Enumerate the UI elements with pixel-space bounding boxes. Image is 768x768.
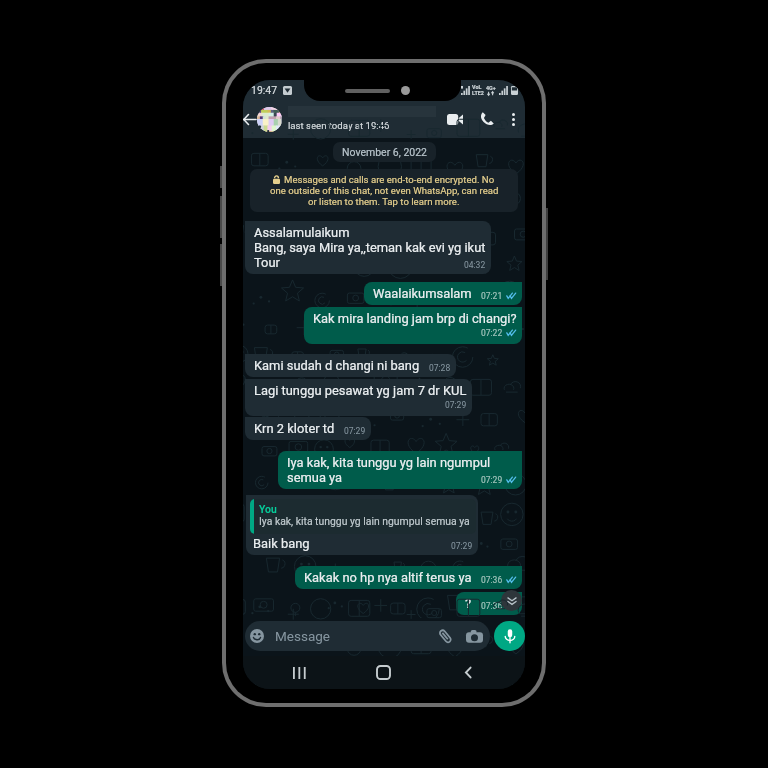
button[interactable]: Back bbox=[243, 100, 256, 138]
staticText: semua ya bbox=[287, 470, 343, 485]
staticText: Messages and calls are end-to-end encryp… bbox=[284, 174, 495, 185]
staticText: 07:28 bbox=[429, 363, 451, 373]
staticText: 07:29 bbox=[344, 426, 366, 436]
button[interactable]: ? bbox=[456, 592, 522, 615]
button[interactable]: Iya kak, kita tunggu yg lain ngumpul bbox=[278, 451, 522, 489]
button[interactable]: Video call bbox=[440, 100, 470, 138]
staticText: You bbox=[259, 503, 277, 515]
staticText: 07:29 bbox=[451, 541, 473, 551]
button[interactable]: Voice call bbox=[470, 100, 504, 138]
staticText: Kak mira landing jam brp di changi? bbox=[313, 311, 517, 326]
staticText: Kakak no hp nya altif terus ya bbox=[304, 570, 472, 585]
button[interactable]: Kami sudah d changi ni bang bbox=[245, 354, 456, 377]
staticText: LTE2 bbox=[472, 90, 484, 96]
staticText: 4G+ bbox=[486, 85, 496, 91]
button[interactable]: Krn 2 kloter td bbox=[245, 417, 371, 440]
staticText: one outside of this chat, not even Whats… bbox=[270, 185, 499, 196]
staticText: Assalamulaikum bbox=[254, 225, 350, 240]
staticText: Baik bang bbox=[253, 536, 310, 551]
staticText: 07:36 bbox=[481, 601, 503, 611]
button[interactable]: Voice message bbox=[494, 621, 525, 651]
staticText: Iya kak, kita tunggu yg lain ngumpul bbox=[287, 455, 491, 470]
button[interactable]: Attach bbox=[435, 626, 455, 646]
button[interactable]: November 6, 2022 bbox=[333, 142, 436, 162]
staticText: November 6, 2022 bbox=[342, 146, 427, 158]
button[interactable]: Kak mira landing jam brp di changi? bbox=[304, 307, 522, 344]
staticText: 04:32 bbox=[464, 260, 486, 270]
button[interactable]: Lagi tunggu pesawat yg jam 7 dr KUL bbox=[245, 379, 472, 416]
staticText: 07:29 bbox=[445, 400, 467, 410]
staticText: last seen today at 19:46 bbox=[288, 120, 390, 131]
staticText: or listen to them. Tap to learn more. bbox=[308, 196, 460, 207]
staticText: 07:21 bbox=[481, 291, 503, 301]
button[interactable]: Message bbox=[245, 621, 490, 651]
staticText: Krn 2 kloter td bbox=[254, 421, 335, 436]
staticText: 07:36 bbox=[481, 575, 503, 585]
staticText: Lagi tunggu pesawat yg jam 7 dr KUL bbox=[254, 383, 467, 398]
button[interactable]: Recents bbox=[257, 656, 341, 689]
staticText: 19:47 bbox=[251, 84, 278, 96]
staticText: VoL bbox=[472, 84, 482, 90]
button[interactable]: Home bbox=[341, 656, 426, 689]
staticText: Kami sudah d changi ni bang bbox=[254, 358, 420, 373]
staticText: ? bbox=[465, 596, 472, 611]
button[interactable]: More options bbox=[504, 100, 522, 138]
button[interactable]: Kakak no hp nya altif terus ya bbox=[295, 566, 522, 589]
staticText: 07:29 bbox=[481, 475, 503, 485]
staticText: Iya kak, kita tunggu yg lain ngumpul sem… bbox=[259, 515, 470, 527]
button[interactable]: Camera bbox=[464, 626, 484, 646]
staticText: Bang, saya Mira ya,,teman kak evi yg iku… bbox=[254, 240, 486, 255]
button[interactable]: Assalamulaikum bbox=[245, 221, 491, 274]
button[interactable]: Messages and calls are end-to-end encryp… bbox=[250, 169, 518, 212]
staticText: Waalaikumsalam bbox=[373, 286, 472, 301]
staticText: 07:22 bbox=[481, 328, 503, 338]
button[interactable]: Waalaikumsalam bbox=[364, 282, 522, 305]
staticText: Message bbox=[275, 628, 330, 644]
button[interactable]: Back bbox=[426, 656, 511, 689]
button[interactable]: You bbox=[246, 495, 478, 555]
button[interactable]: Scroll to bottom bbox=[501, 590, 522, 611]
staticText: Tour bbox=[254, 255, 280, 270]
